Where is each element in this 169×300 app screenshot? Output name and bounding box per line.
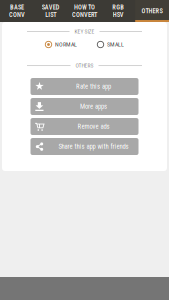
button[interactable]: Remove ads: [30, 118, 138, 135]
staticText: Remove ads: [77, 123, 109, 130]
staticText: OTHERS: [142, 7, 163, 15]
staticText: RGB: [112, 3, 124, 11]
button[interactable]: More apps: [30, 98, 138, 115]
staticText: More apps: [80, 103, 107, 110]
staticText: BASE: [10, 3, 24, 11]
button[interactable]: SMALL: [97, 41, 124, 48]
button[interactable]: OTHERS: [135, 0, 169, 22]
staticText: NORMAL: [55, 41, 77, 48]
staticText: Rate this app: [76, 83, 111, 90]
button[interactable]: BASE: [0, 0, 34, 22]
staticText: HOW TO: [74, 3, 95, 11]
staticText: KEY SIZE: [74, 28, 94, 35]
staticText: OTHERS: [75, 62, 93, 69]
button[interactable]: RGB: [101, 0, 135, 22]
staticText: CONVERT: [72, 11, 97, 18]
staticText: SMALL: [107, 41, 124, 48]
button[interactable]: Rate this app: [30, 78, 138, 95]
staticText: HSV: [113, 11, 124, 18]
button[interactable]: Share this app with friends: [30, 138, 138, 155]
staticText: Share this app with friends: [58, 143, 128, 150]
button[interactable]: NORMAL: [45, 41, 77, 48]
button[interactable]: SAVED: [34, 0, 68, 22]
staticText: LIST: [45, 11, 56, 18]
staticText: CONV: [9, 11, 25, 18]
button[interactable]: HOW TO: [68, 0, 101, 22]
staticText: SAVED: [42, 3, 60, 11]
